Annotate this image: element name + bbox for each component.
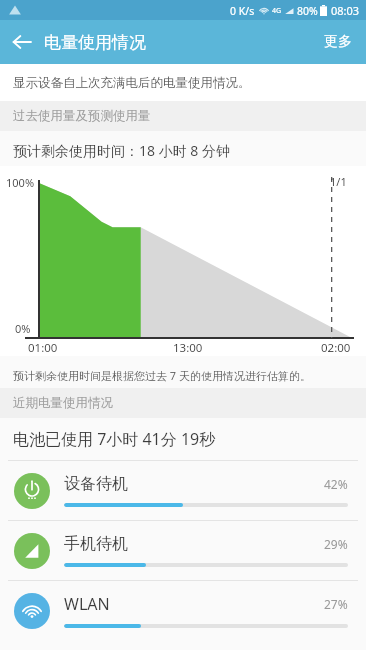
button[interactable]: 设备待机 bbox=[0, 460, 366, 520]
staticText: 80% bbox=[297, 4, 318, 18]
staticText: 42% bbox=[324, 476, 348, 492]
staticText: 13:00 bbox=[173, 340, 203, 356]
staticText: WLAN bbox=[64, 593, 324, 615]
button[interactable]: WLAN bbox=[0, 580, 366, 640]
button[interactable]: Back bbox=[0, 20, 44, 64]
button[interactable]: 更多 bbox=[310, 23, 366, 61]
staticText: 01:00 bbox=[28, 340, 58, 356]
staticText: 预计剩余使用时间是根据您过去 7 天的使用情况进行估算的。 bbox=[13, 368, 312, 383]
staticText: 预计剩余使用时间：18 小时 8 分钟 bbox=[13, 141, 230, 160]
staticText: 08:03 bbox=[331, 3, 360, 18]
staticText: 02:00 bbox=[321, 340, 351, 356]
staticText: 29% bbox=[324, 536, 348, 552]
staticText: 显示设备自上次充满电后的电量使用情况。 bbox=[13, 75, 251, 91]
staticText: 过去使用量及预测使用量 bbox=[13, 108, 151, 124]
staticText: 电量使用情况 bbox=[44, 32, 146, 53]
staticText: 电池已使用 7小时 41分 19秒 bbox=[13, 428, 216, 450]
button[interactable]: 手机待机 bbox=[0, 520, 366, 580]
staticText: 手机待机 bbox=[64, 534, 324, 554]
staticText: 设备待机 bbox=[64, 474, 324, 494]
staticText: 4G bbox=[272, 6, 282, 16]
staticText: 更多 bbox=[324, 33, 352, 51]
staticText: 0% bbox=[15, 321, 31, 336]
staticText: 1/1 bbox=[330, 174, 347, 189]
staticText: 近期电量使用情况 bbox=[13, 395, 113, 411]
staticText: 27% bbox=[324, 596, 348, 612]
staticText: 100% bbox=[6, 175, 35, 190]
staticText: 0 K/s bbox=[230, 4, 255, 18]
